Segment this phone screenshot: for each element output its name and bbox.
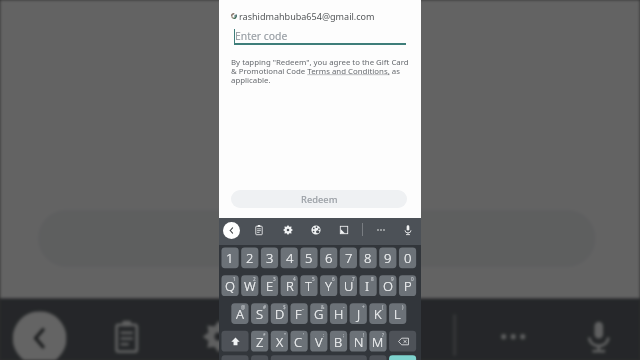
button[interactable]: Redeem (38, 210, 596, 267)
button[interactable]: Back (13, 311, 67, 360)
button[interactable]: Stickers (282, 311, 333, 360)
button[interactable] (261, 247, 278, 268)
button[interactable] (221, 275, 238, 296)
staticText: 8 (371, 276, 374, 282)
button[interactable] (389, 331, 416, 352)
staticText: $ (283, 304, 286, 310)
staticText: _ (302, 304, 305, 310)
button[interactable] (290, 303, 307, 324)
button[interactable] (221, 247, 238, 268)
button[interactable] (241, 275, 258, 296)
button[interactable]: Stickers (308, 222, 324, 238)
button[interactable] (399, 247, 416, 268)
button[interactable] (231, 303, 248, 324)
button[interactable] (369, 303, 386, 324)
staticText: G (314, 305, 324, 323)
staticText: O (383, 277, 393, 295)
staticText: + (362, 304, 365, 310)
button[interactable]: Resize keyboard (371, 311, 421, 360)
other: Backspace (393, 331, 413, 351)
staticText: 2 (253, 276, 256, 282)
staticText: By tapping "Redeem", you agree to the Gi… (231, 57, 411, 85)
button[interactable] (359, 275, 376, 296)
button[interactable] (300, 275, 317, 296)
button[interactable] (271, 331, 288, 352)
staticText: rashidmahbuba654@gmail.com (239, 10, 375, 22)
button[interactable] (261, 275, 278, 296)
button[interactable] (310, 303, 327, 324)
staticText: ) (402, 304, 404, 310)
button[interactable] (320, 275, 337, 296)
button[interactable] (281, 247, 298, 268)
button[interactable] (241, 247, 258, 268)
button[interactable] (350, 303, 367, 324)
staticText: R (286, 277, 294, 295)
staticText: : (323, 332, 325, 338)
button[interactable]: Settings (193, 311, 244, 360)
staticText: 4 (286, 249, 294, 267)
staticText: 7 (345, 249, 353, 267)
button[interactable] (271, 355, 367, 360)
button[interactable]: Redeem (231, 190, 407, 208)
staticText: 7 (352, 276, 355, 282)
button[interactable] (251, 303, 268, 324)
staticText: C (294, 333, 303, 351)
button[interactable] (379, 275, 396, 296)
button[interactable] (320, 247, 337, 268)
button[interactable] (369, 331, 386, 352)
staticText: E (266, 277, 274, 295)
button[interactable] (369, 355, 386, 360)
staticText: 6 (325, 249, 333, 267)
button[interactable]: Voice input (573, 311, 624, 360)
button[interactable] (340, 275, 357, 296)
button[interactable] (251, 355, 268, 360)
button[interactable] (389, 303, 406, 324)
button[interactable]: By tapping "Redeem", you agree to the Gi… (231, 57, 411, 85)
button[interactable] (359, 247, 376, 268)
button[interactable]: Voice input (400, 222, 416, 238)
button[interactable] (221, 355, 248, 360)
button[interactable] (350, 331, 367, 352)
button[interactable] (271, 303, 288, 324)
button[interactable]: Settings (280, 222, 296, 238)
staticText: Redeem (260, 219, 377, 261)
button[interactable] (330, 303, 347, 324)
button[interactable] (379, 247, 396, 268)
button[interactable] (340, 247, 357, 268)
button[interactable] (221, 331, 248, 352)
staticText: Q (225, 277, 235, 295)
staticText: " (284, 332, 286, 338)
staticText: D (275, 305, 285, 323)
staticText: 0 (404, 249, 412, 267)
staticText: 3 (273, 276, 276, 282)
staticText: 3 (266, 249, 274, 267)
staticText: @ (241, 304, 246, 310)
button[interactable]: Clipboard (101, 311, 152, 360)
staticText: Enter code (235, 29, 288, 43)
button[interactable] (330, 331, 347, 352)
staticText: Z (256, 333, 264, 351)
button[interactable] (399, 275, 416, 296)
button[interactable]: Resize keyboard (336, 222, 352, 238)
button[interactable]: More options (373, 222, 389, 238)
staticText: 4 (293, 276, 296, 282)
button[interactable]: Back (223, 222, 240, 239)
button[interactable] (300, 247, 317, 268)
other: Shift (225, 331, 245, 351)
staticText: X (276, 333, 284, 351)
staticText: # (263, 304, 266, 310)
staticText: 9 (384, 249, 392, 267)
staticText: 5 (312, 276, 315, 282)
button[interactable] (281, 275, 298, 296)
button[interactable]: More options (488, 311, 539, 360)
button[interactable] (389, 355, 416, 360)
button[interactable] (290, 331, 307, 352)
staticText: M (372, 333, 384, 351)
button[interactable]: Clipboard (251, 222, 267, 238)
staticText: I (365, 277, 370, 295)
button[interactable] (251, 331, 268, 352)
button[interactable] (310, 331, 327, 352)
staticText: V (315, 333, 323, 351)
staticText: T (305, 277, 312, 295)
